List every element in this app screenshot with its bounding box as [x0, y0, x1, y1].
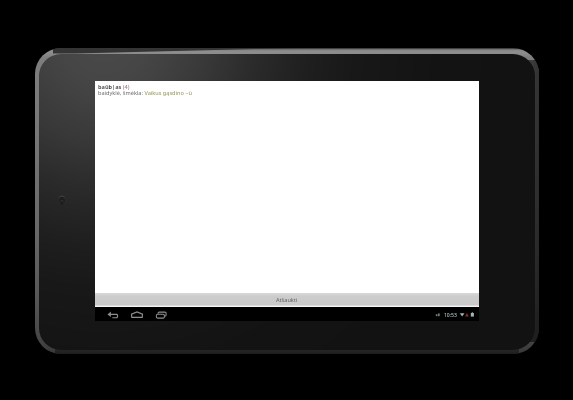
button[interactable]: Recent apps: [152, 308, 171, 321]
button[interactable]: Home: [127, 308, 146, 321]
button[interactable]: Atšaukti: [95, 293, 479, 307]
staticText: 10:53: [444, 312, 457, 319]
staticText: Atšaukti: [276, 296, 298, 304]
staticText: baũb|as (4) baidyklė, šmėkla: Vaikus gąs…: [98, 83, 192, 96]
button[interactable]: Back: [103, 308, 122, 321]
